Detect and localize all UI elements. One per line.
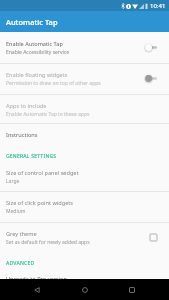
button[interactable]: Enable Automatic Tap <box>0 32 169 63</box>
button[interactable]: Apps to include <box>0 94 169 123</box>
button[interactable]: Size of control panel widget <box>0 161 169 191</box>
staticText: Enable Accessibility service <box>6 49 69 56</box>
staticText: GENERAL SETTINGS <box>6 153 57 160</box>
staticText: Enable Automatic Tap in these apps <box>6 111 90 118</box>
staticText: Enable Automatic Tap <box>6 40 63 48</box>
button[interactable]: Grey theme checkbox <box>148 232 159 243</box>
staticText: Apps to include <box>6 102 47 110</box>
staticText: Large <box>6 178 20 185</box>
button[interactable]: Instructions <box>0 123 169 146</box>
staticText: Permission to draw on top of other apps <box>6 80 101 87</box>
button[interactable]: Enable floating widgets <box>0 63 169 94</box>
staticText: Set as default for newly added apps <box>6 239 90 246</box>
staticText: 10:41 <box>150 2 166 10</box>
staticText: Size of click point widgets <box>6 199 73 207</box>
staticText: ADVANCED <box>6 260 35 267</box>
button[interactable]: Grey theme <box>0 222 169 253</box>
button[interactable]: Home <box>75 280 95 300</box>
button[interactable]: Toggle <box>144 42 159 53</box>
staticText: Size of control panel widget <box>6 169 79 177</box>
button[interactable]: Size of click point widgets <box>0 191 169 222</box>
button[interactable]: Upgrade to Pro version <box>0 267 169 279</box>
button[interactable]: Back <box>27 280 47 300</box>
staticText: Automatic Tap <box>6 17 58 27</box>
staticText: Grey theme <box>6 230 37 238</box>
staticText: Enable floating widgets <box>6 71 68 79</box>
staticText: Instructions <box>6 131 38 139</box>
staticText: Upgrade to Pro version <box>6 275 67 283</box>
staticText: Medium <box>6 208 26 215</box>
button[interactable]: Recent apps <box>122 280 142 300</box>
button[interactable]: Toggle disabled <box>144 73 159 84</box>
